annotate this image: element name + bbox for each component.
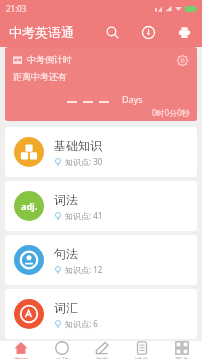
staticText: 中考英语通 (9, 24, 74, 40)
staticText: 更多 (175, 356, 189, 359)
staticText: 0时0分0秒 (152, 107, 190, 118)
staticText: 词法 (54, 192, 78, 207)
staticText: adj. (21, 200, 38, 212)
button[interactable]: adj. (5, 181, 197, 231)
staticText: Days (122, 93, 143, 105)
staticText: 发现 (55, 356, 69, 359)
staticText: 首页 (14, 356, 28, 359)
staticText: 作文 (95, 356, 109, 359)
button[interactable]: Print (174, 22, 194, 42)
button[interactable]: Settings (174, 52, 190, 68)
button[interactable]: 句法 (5, 235, 197, 285)
staticText: 知识点: 30 (65, 156, 103, 167)
staticText: 知识点: 12 (65, 264, 103, 275)
staticText: 距离中考还有 (13, 71, 67, 82)
button[interactable]: 更多 (162, 341, 202, 359)
button[interactable]: Search (102, 22, 122, 42)
staticText: 试卷 (135, 356, 149, 359)
staticText: 基础知识 (54, 138, 102, 153)
button[interactable]: 发现 (41, 341, 82, 359)
staticText: 句法 (54, 246, 78, 261)
staticText: 中考倒计时 (27, 54, 72, 65)
staticText: 知识点: 41 (65, 210, 103, 221)
button[interactable]: 词汇 (5, 289, 197, 339)
staticText: 21:03 (6, 3, 27, 14)
staticText: 知识点: 6 (65, 318, 98, 329)
button[interactable]: 中考倒计时 (5, 47, 197, 121)
button[interactable]: 试卷 (122, 341, 162, 359)
button[interactable]: 首页 (0, 341, 41, 359)
button[interactable]: 作文 (82, 341, 122, 359)
button[interactable]: Download (138, 22, 158, 42)
button[interactable]: 基础知识 (5, 127, 197, 177)
staticText: 词汇 (54, 300, 78, 315)
